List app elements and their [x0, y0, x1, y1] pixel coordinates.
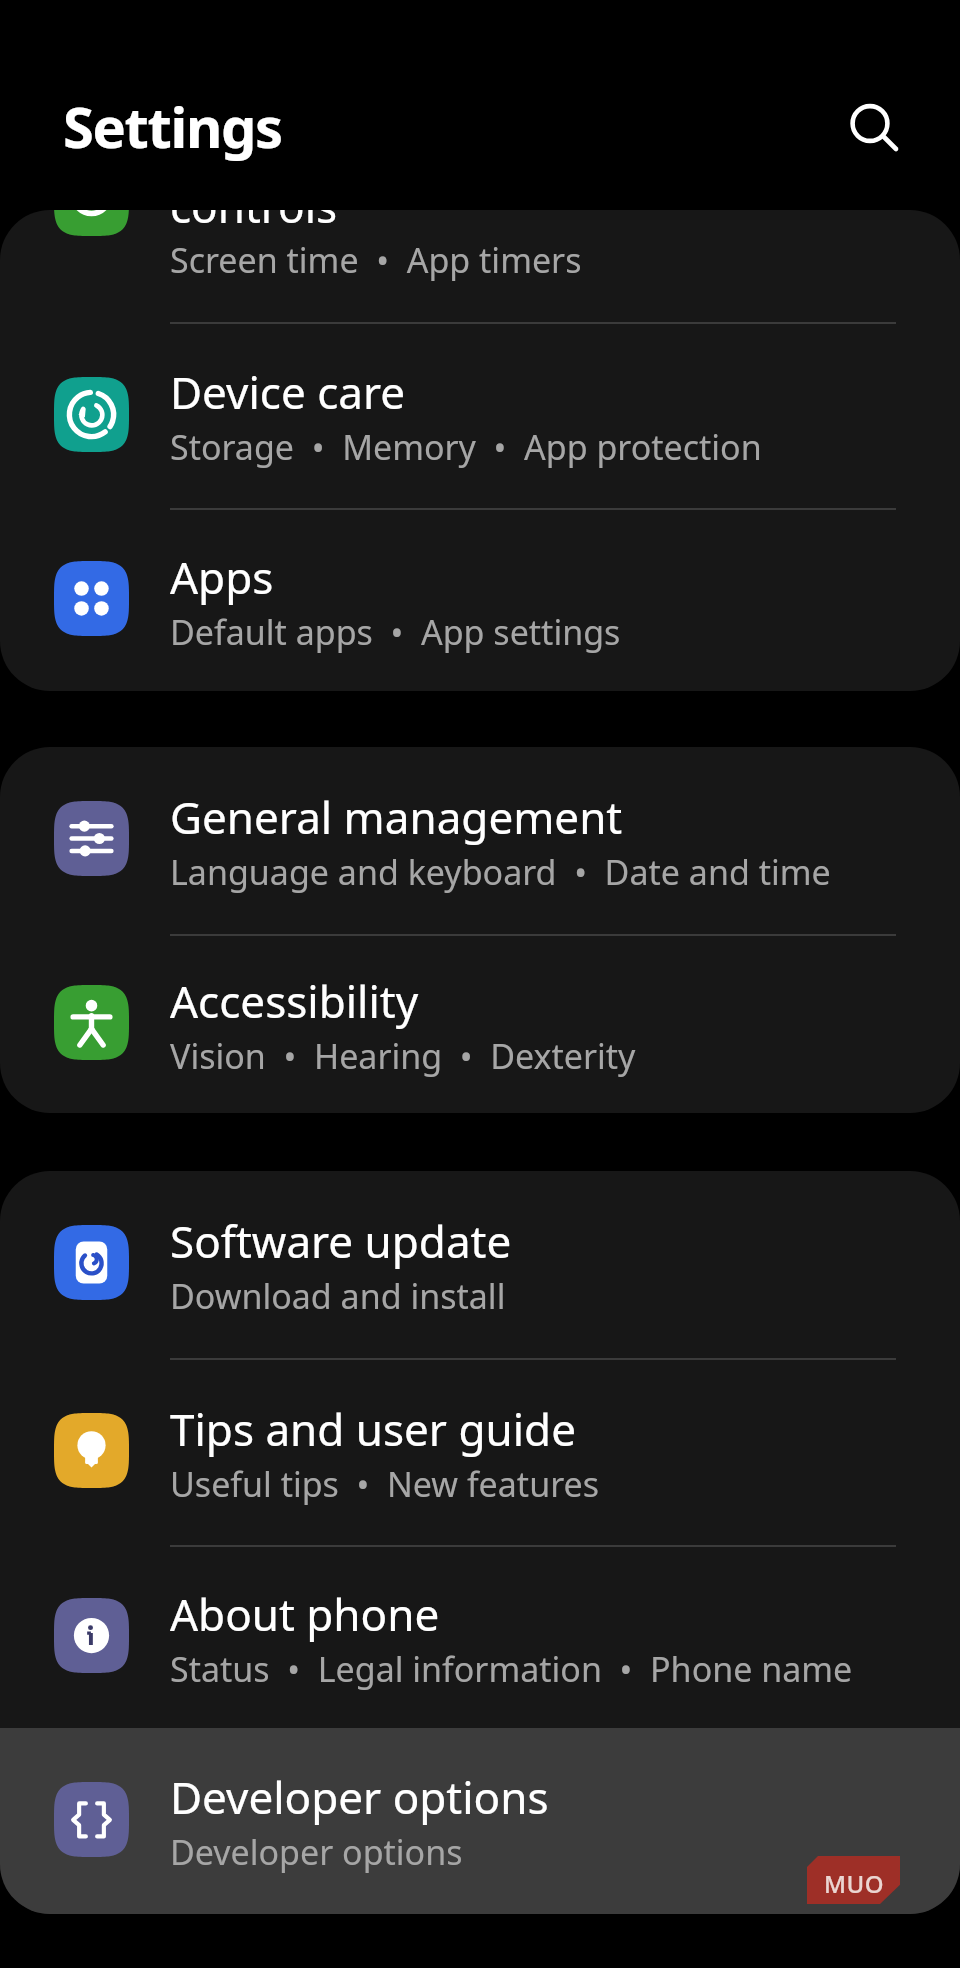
staticText: Useful tips • New features	[170, 1461, 599, 1507]
button[interactable]: Tips and user guide	[0, 1360, 960, 1545]
staticText: Status • Legal information • Phone name	[170, 1646, 853, 1692]
staticText: Settings	[63, 88, 282, 164]
staticText: Apps	[170, 547, 274, 607]
button[interactable]: Screen time • App timers	[0, 210, 960, 322]
staticText: MUO	[824, 1867, 885, 1900]
staticText: Screen time • App timers	[170, 237, 582, 283]
button[interactable]: About phone	[0, 1547, 960, 1728]
button[interactable]: Software update	[0, 1171, 960, 1358]
staticText: Default apps • App settings	[170, 609, 621, 655]
staticText: About phone	[170, 1584, 440, 1644]
staticText: General management	[170, 787, 623, 847]
staticText: Device care	[170, 362, 406, 422]
staticText: Developer options	[170, 1767, 549, 1827]
button[interactable]: Developer options	[0, 1728, 960, 1914]
staticText: Storage • Memory • App protection	[170, 424, 762, 470]
staticText: Language and keyboard • Date and time	[170, 849, 831, 895]
staticText: Accessibility	[170, 971, 419, 1031]
staticText: Developer options	[170, 1829, 463, 1875]
staticText: Vision • Hearing • Dexterity	[170, 1033, 636, 1079]
button[interactable]: Apps	[0, 510, 960, 691]
staticText: Tips and user guide	[170, 1399, 576, 1459]
button[interactable]: Device care	[0, 324, 960, 508]
staticText: Download and install	[170, 1273, 506, 1319]
staticText: Software update	[170, 1211, 512, 1271]
button[interactable]: General management	[0, 747, 960, 934]
button[interactable]: Accessibility	[0, 936, 960, 1113]
button[interactable]: Search	[828, 81, 913, 166]
